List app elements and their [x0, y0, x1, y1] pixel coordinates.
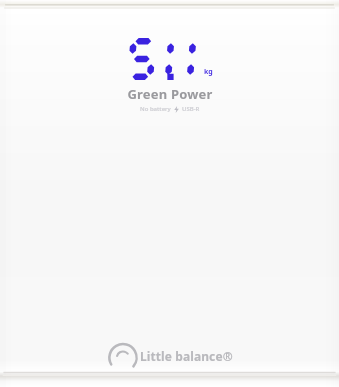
- staticText: Green Power: [127, 85, 213, 103]
- button[interactable]: Weight reading 51.1 kilograms: [127, 38, 213, 113]
- staticText: kg: [204, 67, 213, 77]
- button[interactable]: Little balance®: [106, 336, 233, 366]
- staticText: Little balance®: [140, 348, 233, 364]
- staticText: No battery: [140, 105, 171, 113]
- button[interactable]: Weight reading 51.1 kilograms: [0, 0, 339, 387]
- staticText: USB-R: [182, 105, 200, 113]
